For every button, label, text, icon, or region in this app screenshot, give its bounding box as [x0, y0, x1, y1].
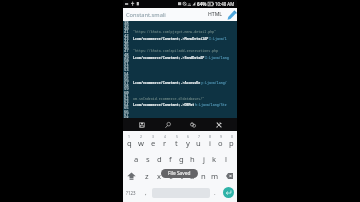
button[interactable]: j [198, 150, 209, 167]
staticText: 52 [124, 64, 129, 68]
staticText: I:Ljava/l [209, 36, 227, 40]
button[interactable]: Search [161, 118, 174, 131]
staticText: o [218, 138, 223, 148]
button[interactable]: x [153, 167, 165, 184]
staticText: 56 [124, 77, 129, 81]
staticText: c [169, 171, 173, 181]
button[interactable]: s [142, 150, 154, 167]
staticText: om.snCndroid.ecommerce.d/databases/" [133, 96, 205, 100]
staticText: 55 [124, 74, 129, 78]
staticText: 51 [124, 61, 129, 65]
staticText: b [190, 171, 195, 181]
staticText: 67 [124, 112, 129, 116]
button[interactable]: . [210, 184, 219, 201]
staticText: x [157, 171, 162, 181]
staticText: r [163, 138, 167, 148]
button[interactable]: Shift [123, 167, 141, 184]
staticText: , [145, 189, 147, 197]
button[interactable]: a [130, 150, 142, 167]
staticText: f [169, 154, 172, 164]
staticText: 62 [124, 96, 129, 100]
button[interactable]: n [198, 167, 209, 184]
staticText: a [134, 154, 139, 164]
staticText: 54 [124, 71, 129, 75]
button[interactable]: Edit [226, 9, 237, 20]
staticText: g [179, 154, 184, 164]
button[interactable]: 0 [226, 133, 237, 150]
button[interactable]: ?123 [123, 184, 139, 201]
staticText: 58 [124, 83, 129, 87]
button[interactable]: z [141, 167, 153, 184]
button[interactable]: f [165, 150, 176, 167]
staticText: d [157, 154, 162, 164]
button[interactable]: 7 [193, 133, 204, 150]
button[interactable]: 9 [215, 133, 226, 150]
button[interactable]: m [209, 167, 220, 184]
staticText: 45 [124, 42, 129, 46]
button[interactable]: Compile [186, 118, 199, 131]
button[interactable]: 2 [135, 133, 147, 150]
staticText: 43 [124, 36, 129, 40]
staticText: 68 [124, 115, 129, 118]
staticText: 60 [124, 90, 129, 94]
staticText: 2 [140, 134, 142, 139]
staticText: 10:48 AM [215, 1, 235, 7]
staticText: "https://khata.com/api/add-reservations.… [133, 48, 219, 52]
staticText: 49 [124, 55, 129, 59]
button[interactable]: Backspace [220, 167, 237, 184]
staticText: s [146, 154, 150, 164]
staticText: 0 [231, 134, 233, 139]
staticText: 64% [197, 1, 207, 7]
button[interactable]: c [165, 167, 176, 184]
staticText: 7 [198, 134, 200, 139]
staticText: Lcom/ecommerce/Constant;->DBPat [133, 102, 195, 106]
button[interactable]: , [139, 184, 152, 201]
staticText: p [229, 138, 234, 148]
staticText: 39 [124, 23, 129, 27]
button[interactable]: Tools [212, 118, 225, 131]
button[interactable]: l [220, 150, 231, 167]
staticText: j [203, 154, 205, 164]
staticText: y [186, 138, 190, 148]
staticText: 44 [124, 39, 129, 43]
staticText: 50 [124, 58, 129, 62]
button[interactable]: 1 [123, 133, 135, 150]
staticText: 1 [128, 134, 130, 139]
staticText: I:Ljava/lang [205, 55, 229, 59]
button[interactable]: 5 [171, 133, 182, 150]
staticText: y:Ljava/lang/ [201, 80, 227, 84]
staticText: 4 [164, 134, 166, 139]
staticText: 53 [124, 67, 129, 71]
staticText: k [212, 154, 217, 164]
button[interactable]: v [176, 167, 187, 184]
button[interactable]: 6 [182, 133, 193, 150]
button[interactable]: Enter [223, 187, 234, 198]
staticText: t [175, 138, 178, 148]
button[interactable]: b [187, 167, 198, 184]
button[interactable]: g [176, 150, 187, 167]
staticText: l [225, 154, 227, 164]
staticText: i [209, 138, 211, 148]
staticText: 42 [124, 33, 129, 37]
button[interactable]: k [209, 150, 220, 167]
staticText: 41 [124, 29, 129, 33]
button[interactable]: 8 [204, 133, 215, 150]
staticText: 59 [124, 86, 129, 90]
staticText: 47 [124, 48, 129, 52]
staticText: z [145, 171, 149, 181]
staticText: 66 [124, 109, 129, 113]
button[interactable]: 3 [147, 133, 159, 150]
staticText: e [151, 138, 156, 148]
staticText: Lcom/ecommerce/Constant;->AccessKe [133, 80, 201, 84]
staticText: 63 [124, 99, 129, 103]
staticText: m [211, 171, 219, 181]
button[interactable]: Save [135, 118, 148, 131]
button[interactable]: d [154, 150, 165, 167]
staticText: HTML [208, 11, 223, 18]
staticText: "https://khata.com/pjrgot-menu-detail.ph… [133, 29, 217, 33]
button[interactable]: 4 [159, 133, 171, 150]
staticText: 61 [124, 93, 129, 97]
button[interactable]: h [187, 150, 198, 167]
staticText: Lcom/ecommerce/Constant;->SendDataAP [133, 55, 205, 59]
